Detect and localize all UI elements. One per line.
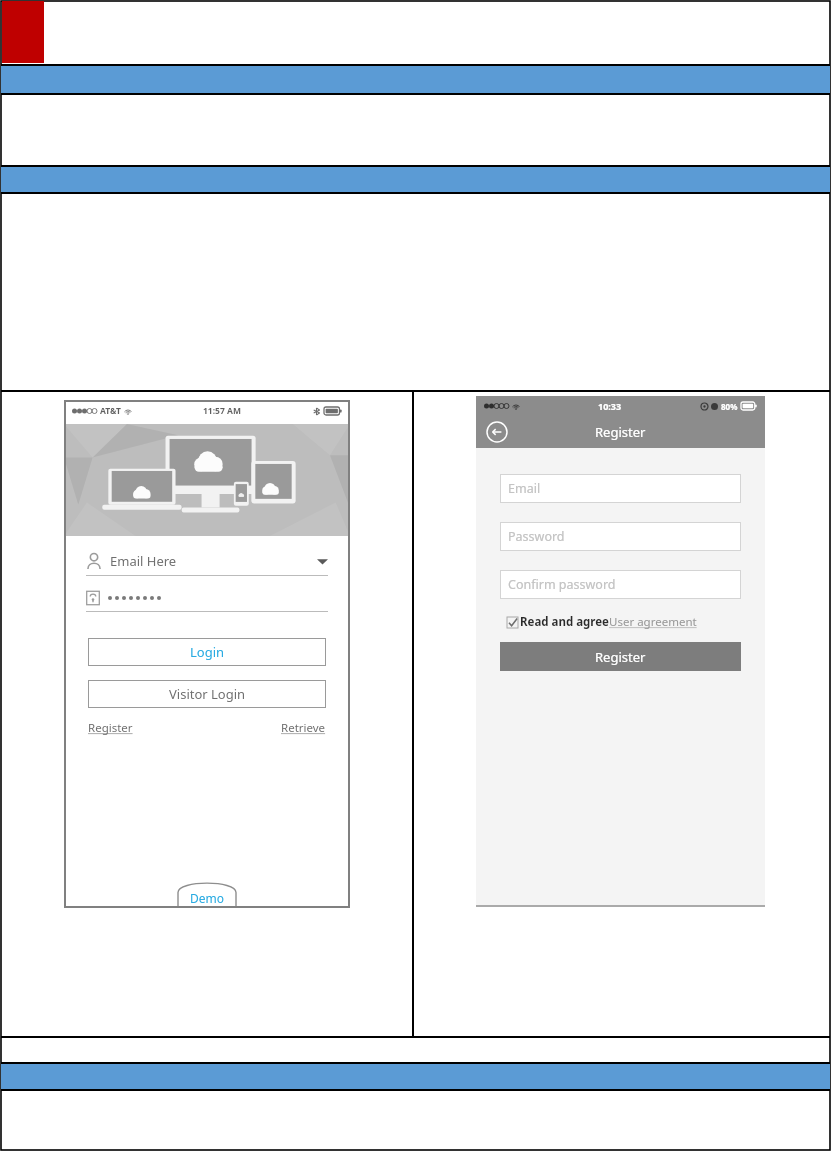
button[interactable]: Register xyxy=(500,642,741,671)
button[interactable]: Password xyxy=(500,522,741,551)
staticText: 10:33 xyxy=(598,400,622,412)
staticText: Register xyxy=(595,648,646,666)
button[interactable]: Confirm password xyxy=(500,570,741,599)
button[interactable]: Read and agree xyxy=(507,614,745,630)
button[interactable]: Email xyxy=(500,474,741,503)
staticText: Login xyxy=(190,643,225,661)
staticText: Read and agree xyxy=(520,614,609,630)
button[interactable]: Retrieve xyxy=(281,720,326,736)
staticText: Demo xyxy=(190,890,225,906)
staticText: Register xyxy=(595,423,646,441)
staticText: Email xyxy=(508,480,541,497)
button[interactable] xyxy=(86,584,328,612)
button[interactable]: Visitor Login xyxy=(88,680,326,708)
staticText: 80% xyxy=(721,401,738,412)
staticText: AT&T xyxy=(100,405,121,417)
staticText: Password xyxy=(508,528,565,545)
button[interactable]: User agreement xyxy=(609,614,697,630)
staticText: Retrieve xyxy=(281,720,326,736)
staticText: Confirm password xyxy=(508,576,616,593)
button[interactable]: Email Here xyxy=(86,546,328,576)
staticText: Visitor Login xyxy=(169,685,246,703)
staticText: Email Here xyxy=(110,552,177,570)
button[interactable]: Register xyxy=(88,720,133,736)
staticText: 11:57 AM xyxy=(203,405,241,417)
button[interactable]: Back xyxy=(486,421,508,443)
staticText: Register xyxy=(88,720,133,736)
button[interactable]: Demo xyxy=(177,880,237,908)
button[interactable]: Login xyxy=(88,638,326,666)
